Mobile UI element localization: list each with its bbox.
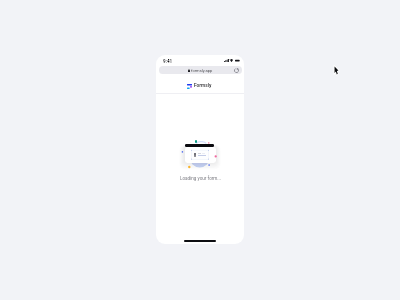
staticText: formsly.app [191, 68, 213, 73]
staticText: Formsly [194, 83, 212, 89]
button[interactable]: formsly.app [159, 66, 242, 74]
staticText: Loading your form... [180, 176, 221, 181]
button[interactable]: Formsly [156, 77, 244, 93]
button[interactable]: Reload page [232, 66, 240, 74]
staticText: 9:41 [163, 59, 173, 64]
